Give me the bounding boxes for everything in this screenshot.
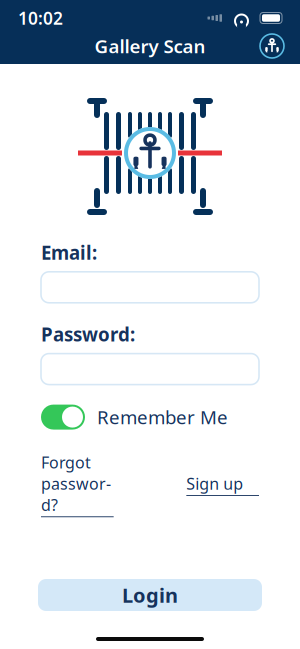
staticText: 10:02 [18, 6, 63, 29]
staticText: Sign up [186, 473, 243, 494]
button[interactable]: Sign up [186, 473, 259, 496]
button[interactable]: Account [258, 32, 286, 60]
button[interactable]: Forgot password? [41, 452, 114, 517]
staticText: Forgot password? [41, 452, 111, 515]
staticText: Remember Me [97, 405, 228, 429]
staticText: Email: [41, 240, 97, 265]
staticText: Password: [41, 322, 135, 347]
button[interactable]: Login [38, 579, 262, 611]
button[interactable]: Remember Me [41, 405, 259, 430]
staticText: Gallery Scan [94, 34, 205, 58]
staticText: Login [122, 582, 178, 608]
